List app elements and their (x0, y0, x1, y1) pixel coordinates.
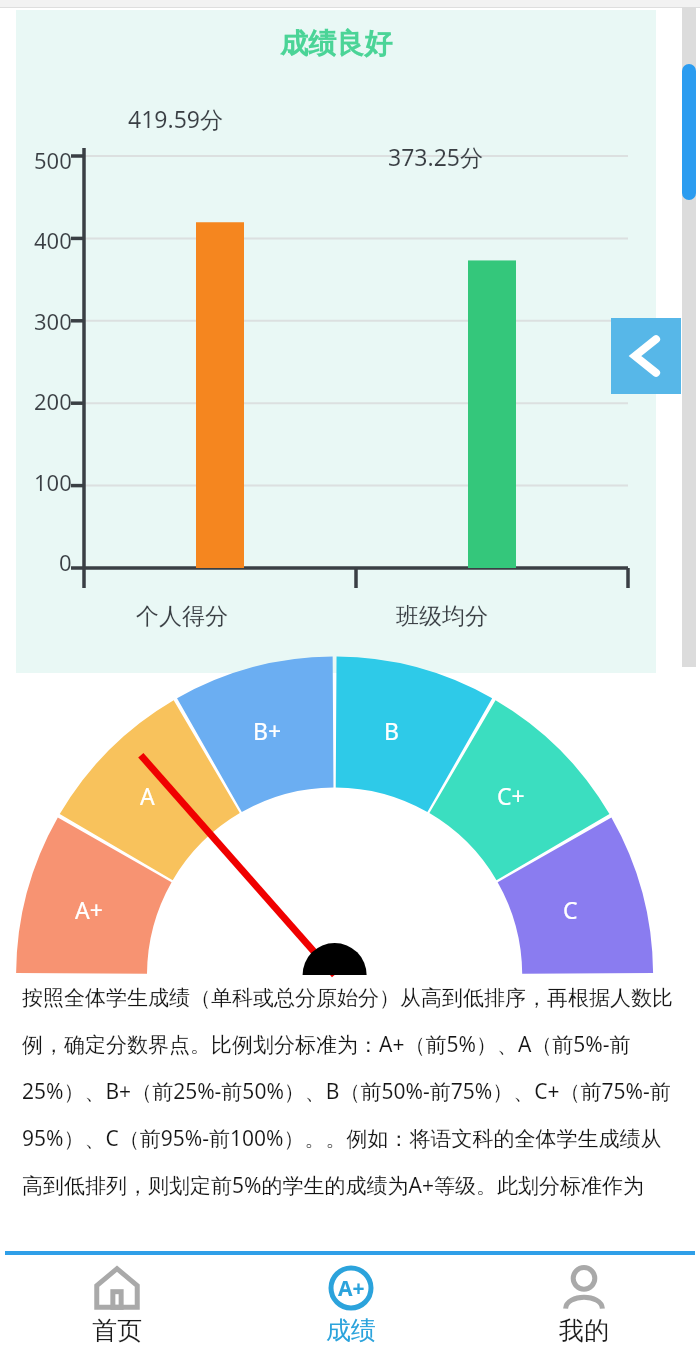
other: Home (94, 1265, 140, 1311)
staticText: 100 (34, 467, 72, 497)
staticText: B (384, 715, 399, 746)
staticText: 373.25分 (388, 141, 483, 172)
staticText: C+ (497, 780, 525, 811)
staticText: 按照全体学生成绩（单科或总分原始分）从高到低排序，再根据人数比例，确定分数界点。… (22, 985, 674, 1200)
staticText: 200 (34, 386, 72, 416)
button[interactable]: Grades (234, 1255, 467, 1355)
staticText: A+ (338, 1274, 365, 1303)
staticText: 0 (59, 547, 72, 577)
button[interactable]: Previous chart (611, 318, 681, 394)
staticText: 成绩良好 (16, 26, 656, 61)
staticText: C (563, 894, 578, 925)
staticText: 400 (34, 225, 72, 255)
other: Profile (561, 1265, 607, 1311)
other: Grades (328, 1265, 374, 1311)
staticText: A+ (75, 894, 103, 925)
staticText: A (140, 780, 155, 811)
staticText: 首页 (92, 1315, 142, 1346)
staticText: 419.59分 (128, 103, 223, 134)
staticText: B+ (253, 715, 282, 746)
button[interactable]: Home (0, 1255, 234, 1355)
staticText: 500 (34, 145, 72, 175)
staticText: 班级均分 (396, 602, 488, 631)
button[interactable]: Profile (467, 1255, 700, 1355)
staticText: 个人得分 (136, 602, 228, 631)
staticText: 成绩 (326, 1315, 376, 1346)
staticText: 我的 (559, 1315, 609, 1346)
staticText: 300 (34, 306, 72, 336)
